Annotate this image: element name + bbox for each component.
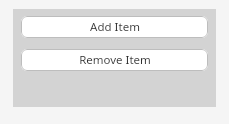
button[interactable]: Remove Item <box>21 49 208 71</box>
staticText: Remove Item <box>79 52 151 68</box>
staticText: Add Item <box>90 19 140 35</box>
button[interactable]: Add Item <box>21 16 208 38</box>
